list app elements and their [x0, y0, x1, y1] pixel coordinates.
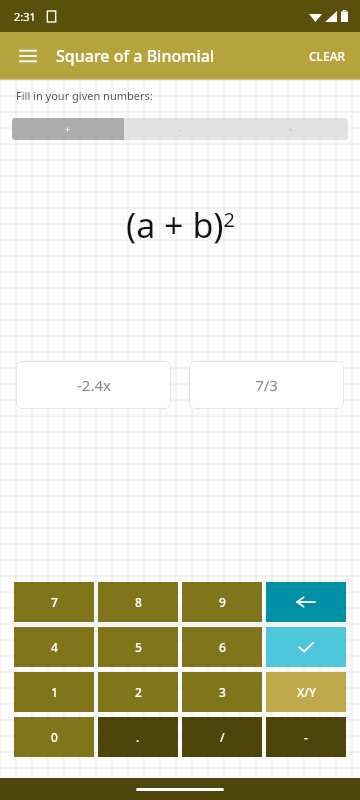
staticText: 7	[51, 594, 58, 610]
staticText: Square of a Binomial	[56, 45, 215, 67]
button[interactable]: .	[98, 717, 178, 757]
button[interactable]: 4	[14, 627, 94, 667]
staticText: 1	[51, 684, 58, 700]
button[interactable]: 7/3	[189, 361, 344, 409]
staticText: 0	[51, 729, 58, 745]
staticText: +	[65, 123, 71, 135]
staticText: -	[304, 729, 308, 745]
staticText: 7/3	[255, 375, 278, 395]
staticText: 9	[219, 594, 226, 610]
button[interactable]: Menu	[8, 36, 48, 76]
staticText: 5	[135, 639, 142, 655]
button[interactable]: +	[12, 118, 124, 140]
button[interactable]: Confirm	[266, 627, 346, 667]
staticText: X/Y	[297, 684, 316, 700]
button[interactable]: 9	[182, 582, 262, 622]
staticText: -2.4x	[77, 375, 111, 395]
button[interactable]: 3	[182, 672, 262, 712]
button[interactable]: X/Y	[266, 672, 346, 712]
staticText: .	[136, 729, 140, 745]
button[interactable]: 1	[14, 672, 94, 712]
staticText: Fill in your given numbers:	[16, 88, 153, 103]
staticText: (a + b)2	[126, 202, 235, 248]
button[interactable]: -2.4x	[16, 361, 171, 409]
button[interactable]: 5	[98, 627, 178, 667]
staticText: 8	[135, 594, 142, 610]
button[interactable]: Backspace	[266, 582, 346, 622]
button[interactable]: 2	[98, 672, 178, 712]
staticText: 4	[51, 639, 58, 655]
staticText: /	[220, 729, 225, 745]
button[interactable]: 8	[98, 582, 178, 622]
button[interactable]: -	[266, 717, 346, 757]
button[interactable]: CLEAR	[295, 36, 360, 76]
staticText: 3	[219, 684, 226, 700]
staticText: CLEAR	[309, 48, 346, 64]
staticText: +-	[288, 123, 297, 135]
staticText: 2	[135, 684, 142, 700]
staticText: 6	[219, 639, 226, 655]
button[interactable]: /	[182, 717, 262, 757]
staticText: -	[179, 123, 182, 135]
button[interactable]: 7	[14, 582, 94, 622]
button[interactable]: 6	[182, 627, 262, 667]
button[interactable]: 0	[14, 717, 94, 757]
staticText: 2:31	[14, 9, 36, 24]
